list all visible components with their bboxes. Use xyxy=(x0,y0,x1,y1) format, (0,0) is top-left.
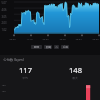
button[interactable]: 時間 xyxy=(31,45,42,49)
staticText: 4.06 xyxy=(1,8,7,12)
staticText: 心拍 xyxy=(63,46,68,49)
button[interactable]: 心拍 xyxy=(61,45,69,49)
staticText: 5.07 xyxy=(1,1,7,5)
staticText: ペ xyxy=(55,46,58,49)
button[interactable]: 距離 xyxy=(44,45,52,49)
staticText: 距離 xyxy=(46,46,51,49)
staticText: 11:16 xyxy=(26,37,33,40)
staticText: 33:48 xyxy=(59,37,66,40)
staticText: 160 xyxy=(1,89,6,92)
staticText: 22:32 xyxy=(42,37,49,40)
button[interactable]: 5.07 xyxy=(0,0,100,34)
staticText: 心拍数 (bpm) xyxy=(3,57,24,62)
staticText: 148 xyxy=(69,65,82,75)
staticText: 56:20 xyxy=(92,37,99,40)
staticText: 45:04 xyxy=(75,37,82,40)
staticText: 3.05 xyxy=(1,15,7,19)
staticText: 平均 xyxy=(22,76,28,80)
staticText: 2.03 xyxy=(1,21,7,25)
staticText: 117 xyxy=(19,65,32,75)
button[interactable]: 心拍数 (bpm) xyxy=(0,55,100,100)
staticText: 00:00 xyxy=(9,37,16,40)
staticText: 180 xyxy=(1,83,6,86)
button[interactable]: ペ xyxy=(54,45,59,49)
staticText: 1.02 xyxy=(1,28,7,32)
staticText: 時間 xyxy=(34,46,39,49)
staticText: 最大 xyxy=(72,76,78,80)
